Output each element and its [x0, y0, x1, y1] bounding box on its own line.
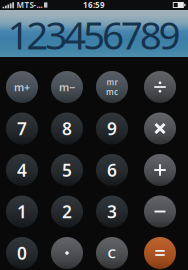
button[interactable]: 2 — [51, 195, 83, 227]
button[interactable]: Memory subtract — [51, 71, 83, 103]
button[interactable]: Subtract — [144, 195, 176, 227]
staticText: mc — [106, 86, 118, 97]
button[interactable]: Decimal point — [51, 237, 83, 269]
button[interactable]: Clear — [96, 237, 128, 269]
staticText: C — [107, 244, 116, 262]
button[interactable]: 4 — [6, 154, 38, 186]
staticText: 8 — [62, 117, 72, 140]
staticText: 123456789 — [7, 9, 181, 60]
staticText: m+ — [14, 80, 30, 94]
button[interactable]: Multiply — [144, 112, 176, 144]
button[interactable]: Equals — [144, 237, 176, 269]
button[interactable]: 5 — [51, 154, 83, 186]
staticText: 2 — [62, 200, 72, 223]
staticText: mr — [106, 77, 117, 87]
staticText: 4 — [17, 158, 27, 181]
button[interactable]: 1 — [6, 195, 38, 227]
button[interactable]: 6 — [96, 154, 128, 186]
button[interactable]: 8 — [51, 112, 83, 144]
staticText: 7 — [17, 117, 27, 140]
button[interactable]: Memory recall, memory clear — [96, 71, 128, 103]
staticText: 1 — [17, 200, 27, 223]
button[interactable]: 0 — [6, 237, 38, 269]
staticText: MTS-... — [16, 0, 42, 10]
staticText: 16:59 — [83, 0, 105, 10]
staticText: 6 — [107, 158, 117, 181]
staticText: 3 — [107, 200, 117, 223]
button[interactable]: Memory add — [6, 71, 38, 103]
staticText: 5 — [62, 158, 72, 181]
staticText: m− — [59, 80, 75, 94]
button[interactable]: 3 — [96, 195, 128, 227]
button[interactable]: Add — [144, 154, 176, 186]
staticText: 0 — [17, 241, 27, 264]
button[interactable]: 9 — [96, 112, 128, 144]
button[interactable]: Divide — [144, 71, 176, 103]
button[interactable]: 7 — [6, 112, 38, 144]
staticText: 9 — [107, 117, 117, 140]
